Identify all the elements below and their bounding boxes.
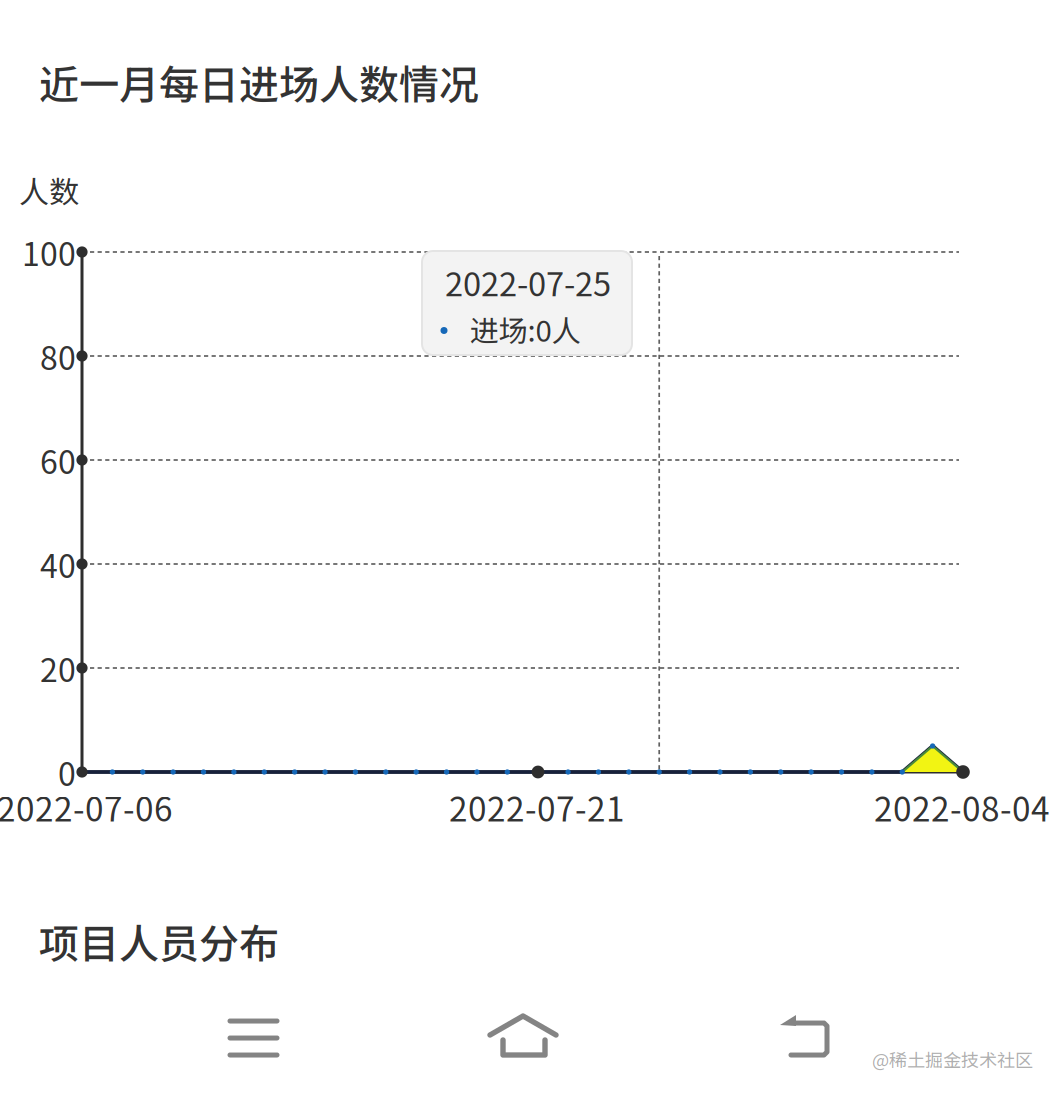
staticText: 40 (40, 541, 76, 587)
staticText: 100 (22, 229, 76, 275)
staticText: 项目人员分布 (39, 912, 279, 970)
staticText: 2022-08-04 (874, 783, 1050, 831)
staticText: 人数 (19, 168, 79, 212)
staticText: 2022-07-25 (445, 258, 611, 306)
button[interactable]: Recent apps (178, 983, 328, 1093)
staticText: 20 (40, 645, 76, 691)
button[interactable]: Back (729, 983, 879, 1093)
staticText: 2022-07-21 (449, 783, 625, 831)
staticText: @稀土掘金技术社区 (872, 1046, 1033, 1072)
staticText: 近一月每日进场人数情况 (39, 53, 479, 111)
staticText: 2022-07-06 (0, 783, 173, 831)
staticText: 进场:0人 (469, 308, 580, 350)
button[interactable]: Home (448, 983, 598, 1093)
staticText: 80 (40, 333, 76, 379)
staticText: 60 (40, 437, 76, 483)
staticText: 0 (58, 749, 76, 795)
